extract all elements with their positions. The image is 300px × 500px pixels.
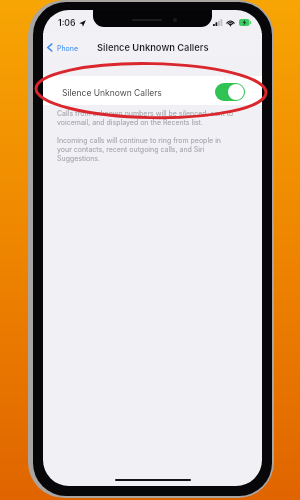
staticText: Incoming calls will continue to ring fro… — [57, 136, 235, 163]
staticText: 1:06 — [58, 18, 76, 28]
button[interactable]: Phone — [43, 41, 83, 54]
staticText: Silence Unknown Callers — [97, 42, 209, 53]
button[interactable]: Silence Unknown Callers toggle — [215, 83, 245, 101]
staticText: Calls from unknown numbers will be silen… — [57, 109, 235, 127]
button[interactable]: Silence Unknown Callers — [43, 76, 262, 105]
staticText: Phone — [57, 44, 79, 52]
staticText: Silence Unknown Callers — [62, 88, 162, 98]
